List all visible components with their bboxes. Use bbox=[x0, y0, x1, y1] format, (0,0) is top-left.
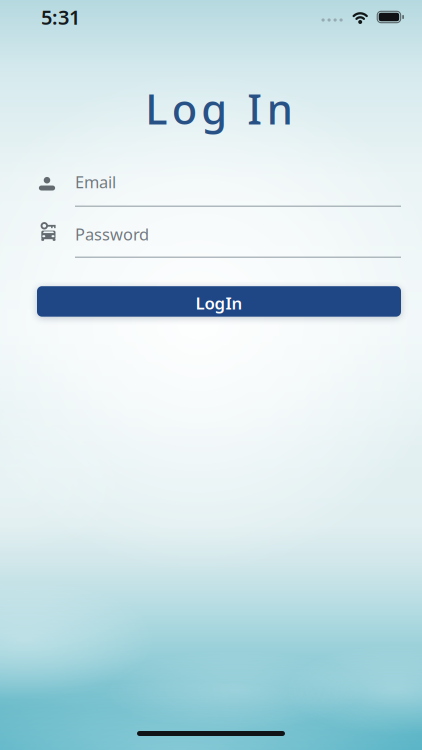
button[interactable]: Email bbox=[0, 171, 422, 207]
staticText: 5:31 bbox=[41, 4, 80, 30]
staticText: LogIn bbox=[195, 291, 242, 314]
staticText: Email bbox=[75, 171, 116, 193]
staticText: Log In bbox=[145, 80, 293, 137]
button[interactable]: Password bbox=[0, 221, 422, 258]
button[interactable]: LogIn bbox=[0, 286, 422, 317]
staticText: Password bbox=[75, 223, 149, 245]
